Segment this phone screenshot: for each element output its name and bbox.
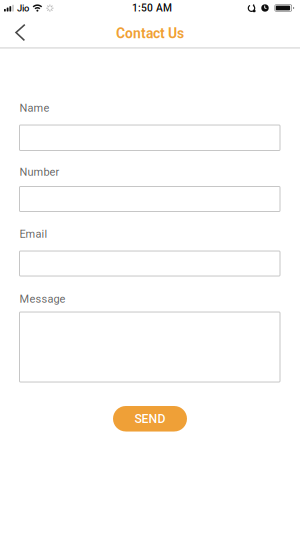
button[interactable]: Message text field xyxy=(19,312,280,382)
staticText: Message xyxy=(19,292,65,305)
button[interactable]: Email text field xyxy=(19,251,280,276)
staticText: Name xyxy=(19,101,49,114)
staticText: Email xyxy=(19,227,47,240)
staticText: Jio xyxy=(17,3,29,14)
button[interactable]: Number text field xyxy=(19,186,280,211)
staticText: Number xyxy=(19,165,59,178)
staticText: SEND xyxy=(134,412,165,426)
staticText: Contact Us xyxy=(116,25,184,42)
button[interactable]: SEND xyxy=(113,406,187,431)
button[interactable]: Back xyxy=(0,21,36,45)
staticText: 1:50 AM xyxy=(132,2,172,14)
button[interactable]: Name text field xyxy=(19,125,280,150)
